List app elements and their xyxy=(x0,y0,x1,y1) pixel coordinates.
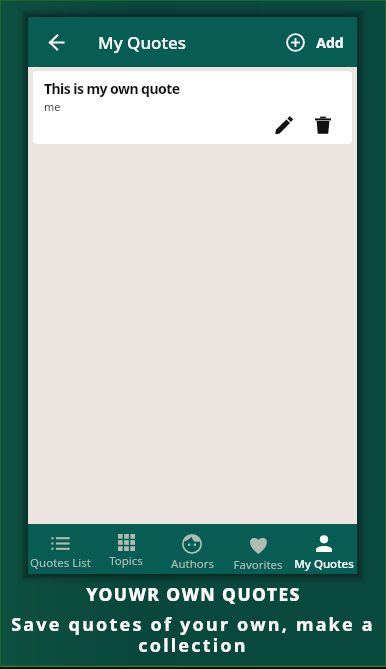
staticText: Favorites xyxy=(233,557,283,573)
button[interactable]: Back xyxy=(36,22,76,62)
button[interactable]: This is my own quote xyxy=(33,71,352,144)
button[interactable]: Favorites xyxy=(225,524,291,574)
staticText: Topics xyxy=(109,553,143,569)
staticText: Save quotes of your own, make a collecti… xyxy=(11,612,375,658)
staticText: Authors xyxy=(171,556,214,572)
staticText: Add xyxy=(316,33,344,52)
button[interactable]: Authors xyxy=(159,524,225,574)
staticText: My Quotes xyxy=(294,556,354,572)
button[interactable]: Edit xyxy=(269,110,299,140)
button[interactable]: Quotes List xyxy=(28,524,93,574)
button[interactable]: My Quotes xyxy=(291,524,357,574)
staticText: me xyxy=(44,99,61,114)
staticText: Quotes List xyxy=(30,555,91,571)
staticText: My Quotes xyxy=(98,31,186,54)
button[interactable]: Delete xyxy=(308,110,338,140)
button[interactable]: Topics xyxy=(93,524,159,574)
button[interactable]: Add xyxy=(284,27,346,58)
staticText: YOUWR OWN QUOTES xyxy=(86,582,301,606)
staticText: This is my own quote xyxy=(44,79,180,98)
